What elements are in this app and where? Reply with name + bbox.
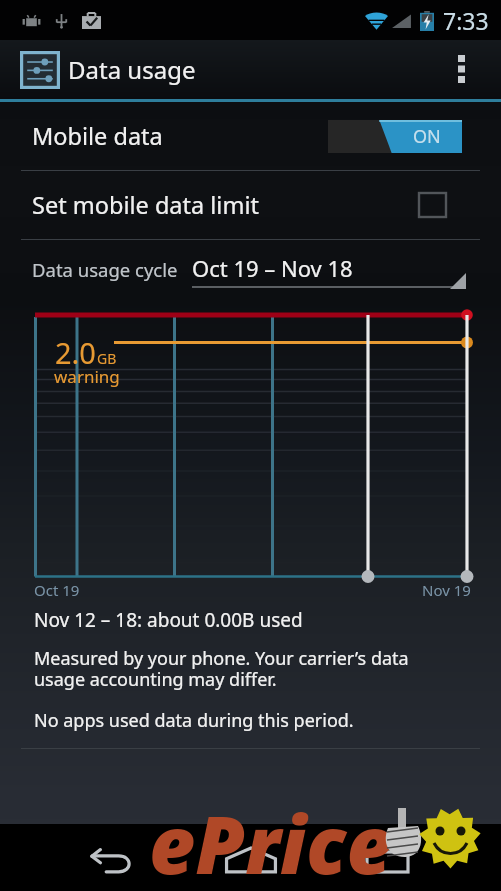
staticText: Mobile data: [32, 120, 163, 152]
button[interactable]: ON: [328, 120, 462, 153]
staticText: No apps used data during this period.: [34, 708, 354, 733]
button[interactable]: Home: [203, 824, 298, 891]
staticText: ON: [413, 124, 441, 149]
staticText: Set mobile data limit: [32, 189, 259, 221]
staticText: Data usage cycle: [32, 257, 178, 282]
button[interactable]: Oct 19 – Nov 18: [192, 253, 466, 296]
button[interactable]: Back: [63, 824, 158, 891]
staticText: Nov 19: [422, 580, 471, 600]
staticText: 7:33: [443, 5, 489, 36]
button[interactable]: Recent apps: [340, 824, 435, 891]
button[interactable]: Set mobile data limit: [0, 171, 501, 239]
staticText: warning: [54, 365, 120, 388]
staticText: Nov 12 – 18: about 0.00B used: [34, 607, 303, 633]
button[interactable]: More options: [422, 40, 501, 99]
staticText: ePrice: [149, 788, 393, 891]
staticText: GB: [97, 349, 117, 368]
staticText: Data usage: [68, 53, 196, 86]
staticText: Oct 19 – Nov 18: [192, 253, 353, 283]
staticText: Oct 19: [34, 580, 80, 600]
staticText: Measured by your phone. Your carrier’s d…: [34, 646, 409, 692]
staticText: 2.0: [55, 333, 96, 372]
button[interactable]: Mobile data: [0, 102, 501, 170]
